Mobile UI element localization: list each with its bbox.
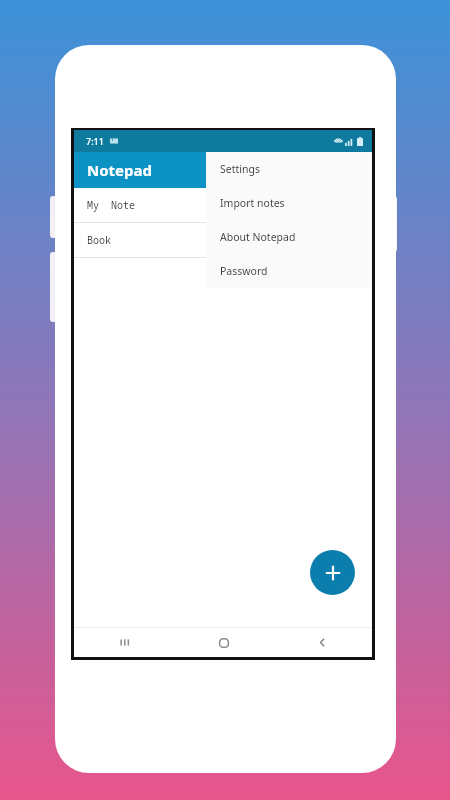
staticText: About Notepad bbox=[220, 230, 296, 244]
staticText: Settings bbox=[220, 162, 260, 176]
staticText: My Note bbox=[87, 198, 135, 212]
button[interactable]: Add note bbox=[310, 550, 355, 595]
button[interactable]: Import notes bbox=[206, 186, 372, 220]
staticText: Notepad bbox=[87, 160, 152, 180]
button[interactable]: Password bbox=[206, 254, 372, 288]
button[interactable]: About Notepad bbox=[206, 220, 372, 254]
button[interactable]: Settings bbox=[206, 152, 372, 186]
button[interactable]: My Note bbox=[74, 188, 372, 222]
staticText: Import notes bbox=[220, 196, 285, 210]
staticText: 7:11 bbox=[86, 135, 104, 147]
button[interactable]: Book bbox=[74, 223, 372, 257]
staticText: Book bbox=[87, 233, 111, 247]
button[interactable]: Home bbox=[174, 628, 273, 657]
staticText: Password bbox=[220, 264, 268, 278]
button[interactable]: Recent apps bbox=[74, 628, 174, 657]
button[interactable]: Back bbox=[273, 628, 372, 657]
